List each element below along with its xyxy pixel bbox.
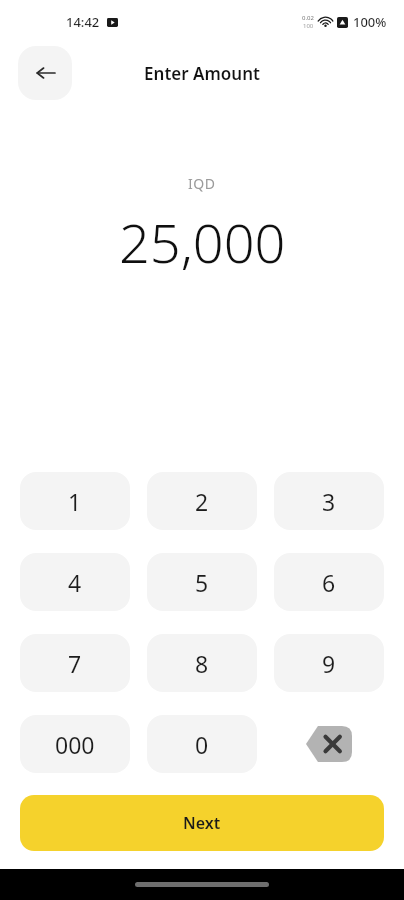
staticText: 14:42 — [66, 13, 100, 31]
staticText: Next — [183, 812, 221, 834]
staticText: 0 — [195, 729, 209, 760]
button[interactable]: 8 — [147, 634, 257, 692]
staticText: 1 — [68, 486, 82, 517]
button[interactable]: 4 — [20, 553, 130, 611]
staticText: 6 — [322, 567, 336, 598]
button[interactable]: 1 — [20, 472, 130, 530]
staticText: 000 — [55, 729, 95, 760]
staticText: 8 — [195, 648, 209, 679]
staticText: 25,000 — [119, 205, 286, 279]
button[interactable]: 3 — [274, 472, 384, 530]
staticText: 5 — [195, 567, 209, 598]
staticText: IQD — [188, 174, 216, 193]
button[interactable]: Next — [20, 795, 384, 851]
button[interactable]: Back — [18, 46, 72, 100]
staticText: Enter Amount — [144, 62, 260, 85]
button[interactable]: 2 — [147, 472, 257, 530]
staticText: 100 — [303, 22, 314, 30]
button[interactable]: 9 — [274, 634, 384, 692]
staticText: 100% — [353, 13, 387, 31]
button[interactable]: 6 — [274, 553, 384, 611]
staticText: 3 — [322, 486, 336, 517]
button[interactable]: 000 — [20, 715, 130, 773]
button[interactable]: 0 — [147, 715, 257, 773]
button[interactable]: 7 — [20, 634, 130, 692]
staticText: 4 — [68, 567, 82, 598]
staticText: 0.02 — [302, 14, 314, 22]
button[interactable]: 5 — [147, 553, 257, 611]
staticText: 2 — [195, 486, 209, 517]
staticText: 7 — [68, 648, 82, 679]
staticText: 9 — [322, 648, 336, 679]
button[interactable]: Delete — [274, 715, 384, 773]
